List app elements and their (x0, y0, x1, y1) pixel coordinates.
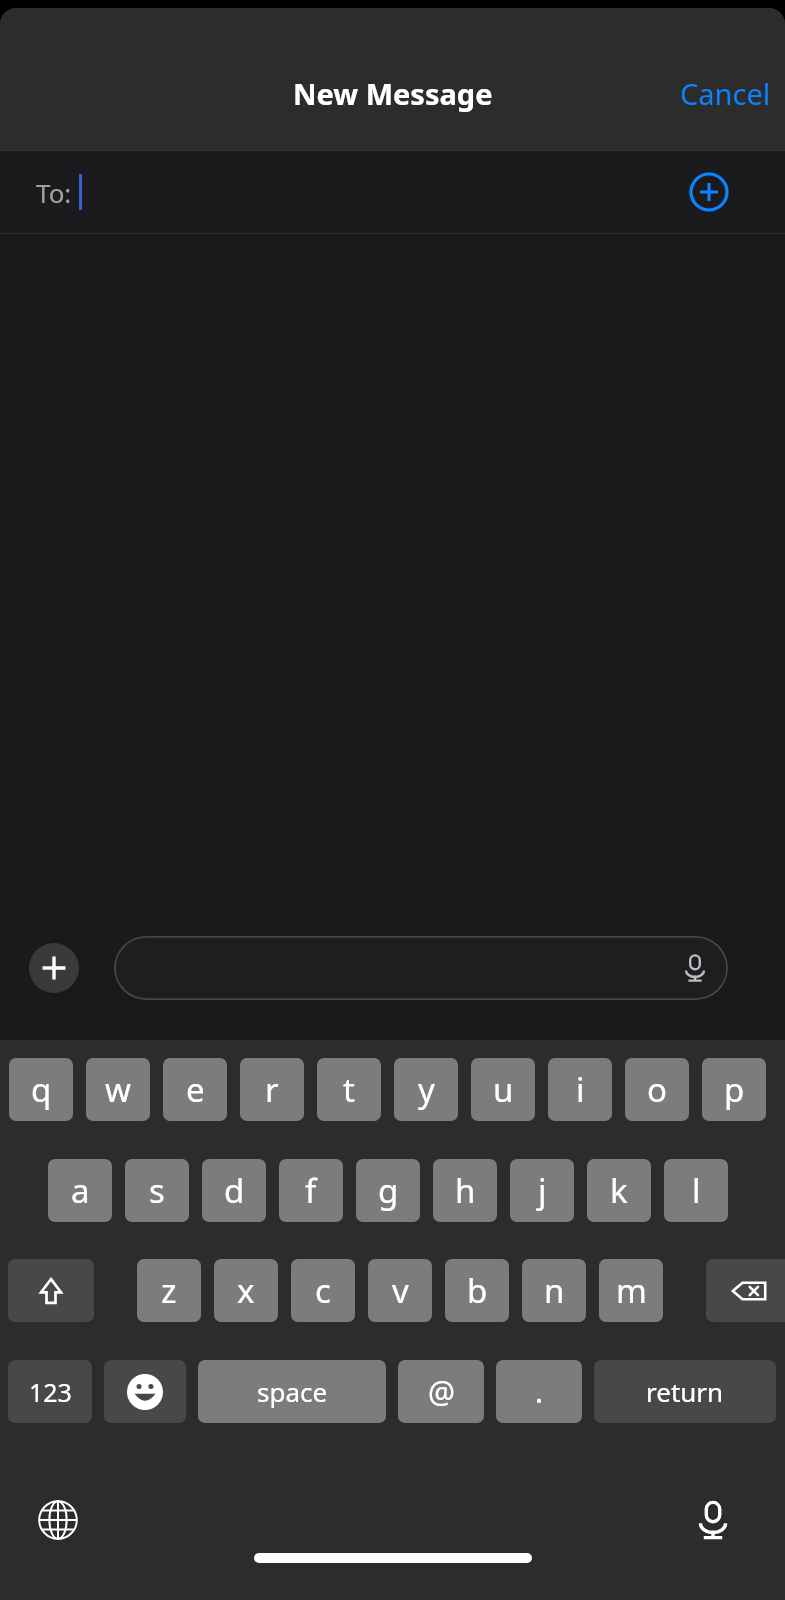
button[interactable]: k (587, 1159, 651, 1222)
staticText: d (224, 1168, 245, 1213)
staticText: w (105, 1067, 131, 1112)
staticText: i (576, 1067, 585, 1112)
button[interactable]: q (9, 1058, 73, 1121)
staticText: l (692, 1168, 701, 1213)
button[interactable]: s (125, 1159, 189, 1222)
staticText: . (535, 1371, 544, 1412)
button[interactable]: v (368, 1259, 432, 1322)
button[interactable]: w (86, 1058, 150, 1121)
staticText: space (257, 1374, 328, 1409)
button[interactable]: 123 (8, 1360, 92, 1423)
button[interactable]: Dictate (691, 1498, 735, 1542)
button[interactable]: x (214, 1259, 278, 1322)
button[interactable]: o (625, 1058, 689, 1121)
button[interactable] (114, 936, 728, 1000)
button[interactable]: l (664, 1159, 728, 1222)
staticText: b (467, 1268, 488, 1313)
button[interactable]: e (163, 1058, 227, 1121)
button[interactable]: z (137, 1259, 201, 1322)
staticText: n (544, 1268, 565, 1313)
button[interactable]: n (522, 1259, 586, 1322)
button[interactable]: j (510, 1159, 574, 1222)
button[interactable]: Add attachment (29, 943, 79, 993)
staticText: t (343, 1067, 355, 1112)
button[interactable]: To: (0, 151, 785, 233)
staticText: New Message (293, 74, 493, 113)
staticText: @ (428, 1371, 455, 1412)
staticText: e (186, 1067, 205, 1112)
staticText: v (392, 1268, 409, 1313)
button[interactable]: Cancel (666, 65, 785, 122)
button[interactable]: h (433, 1159, 497, 1222)
button[interactable]: @ (398, 1360, 484, 1423)
staticText: x (237, 1268, 255, 1313)
staticText: m (616, 1268, 647, 1313)
staticText: j (538, 1168, 547, 1213)
button[interactable]: Shift (8, 1259, 94, 1322)
staticText: To: (36, 175, 72, 210)
staticText: s (149, 1168, 165, 1213)
button[interactable]: a (48, 1159, 112, 1222)
button[interactable]: p (702, 1058, 766, 1121)
button[interactable]: r (240, 1058, 304, 1121)
staticText: q (31, 1067, 52, 1112)
button[interactable]: d (202, 1159, 266, 1222)
staticText: z (161, 1268, 177, 1313)
staticText: a (71, 1168, 90, 1213)
staticText: r (265, 1067, 279, 1112)
button[interactable]: space (198, 1360, 386, 1423)
button[interactable]: Backspace (706, 1259, 785, 1322)
staticText: g (378, 1168, 399, 1213)
button[interactable]: return (594, 1360, 776, 1423)
staticText: o (647, 1067, 667, 1112)
button[interactable]: c (291, 1259, 355, 1322)
staticText: return (646, 1374, 724, 1409)
staticText: h (455, 1168, 476, 1213)
staticText: k (610, 1168, 628, 1213)
button[interactable]: f (279, 1159, 343, 1222)
staticText: c (315, 1268, 331, 1313)
staticText: f (305, 1168, 317, 1213)
button[interactable]: y (394, 1058, 458, 1121)
button[interactable]: Add contact (689, 172, 729, 212)
button[interactable]: . (496, 1360, 582, 1423)
staticText: u (493, 1067, 514, 1112)
button[interactable]: i (548, 1058, 612, 1121)
staticText: p (724, 1067, 745, 1112)
staticText: y (418, 1067, 435, 1112)
button[interactable]: b (445, 1259, 509, 1322)
staticText: 123 (29, 1375, 72, 1409)
button[interactable]: g (356, 1159, 420, 1222)
staticText: Cancel (680, 74, 771, 113)
button[interactable]: u (471, 1058, 535, 1121)
button[interactable]: Switch keyboard language (38, 1500, 78, 1540)
button[interactable]: m (599, 1259, 663, 1322)
button[interactable]: Emoji keyboard (104, 1360, 186, 1423)
button[interactable]: t (317, 1058, 381, 1121)
